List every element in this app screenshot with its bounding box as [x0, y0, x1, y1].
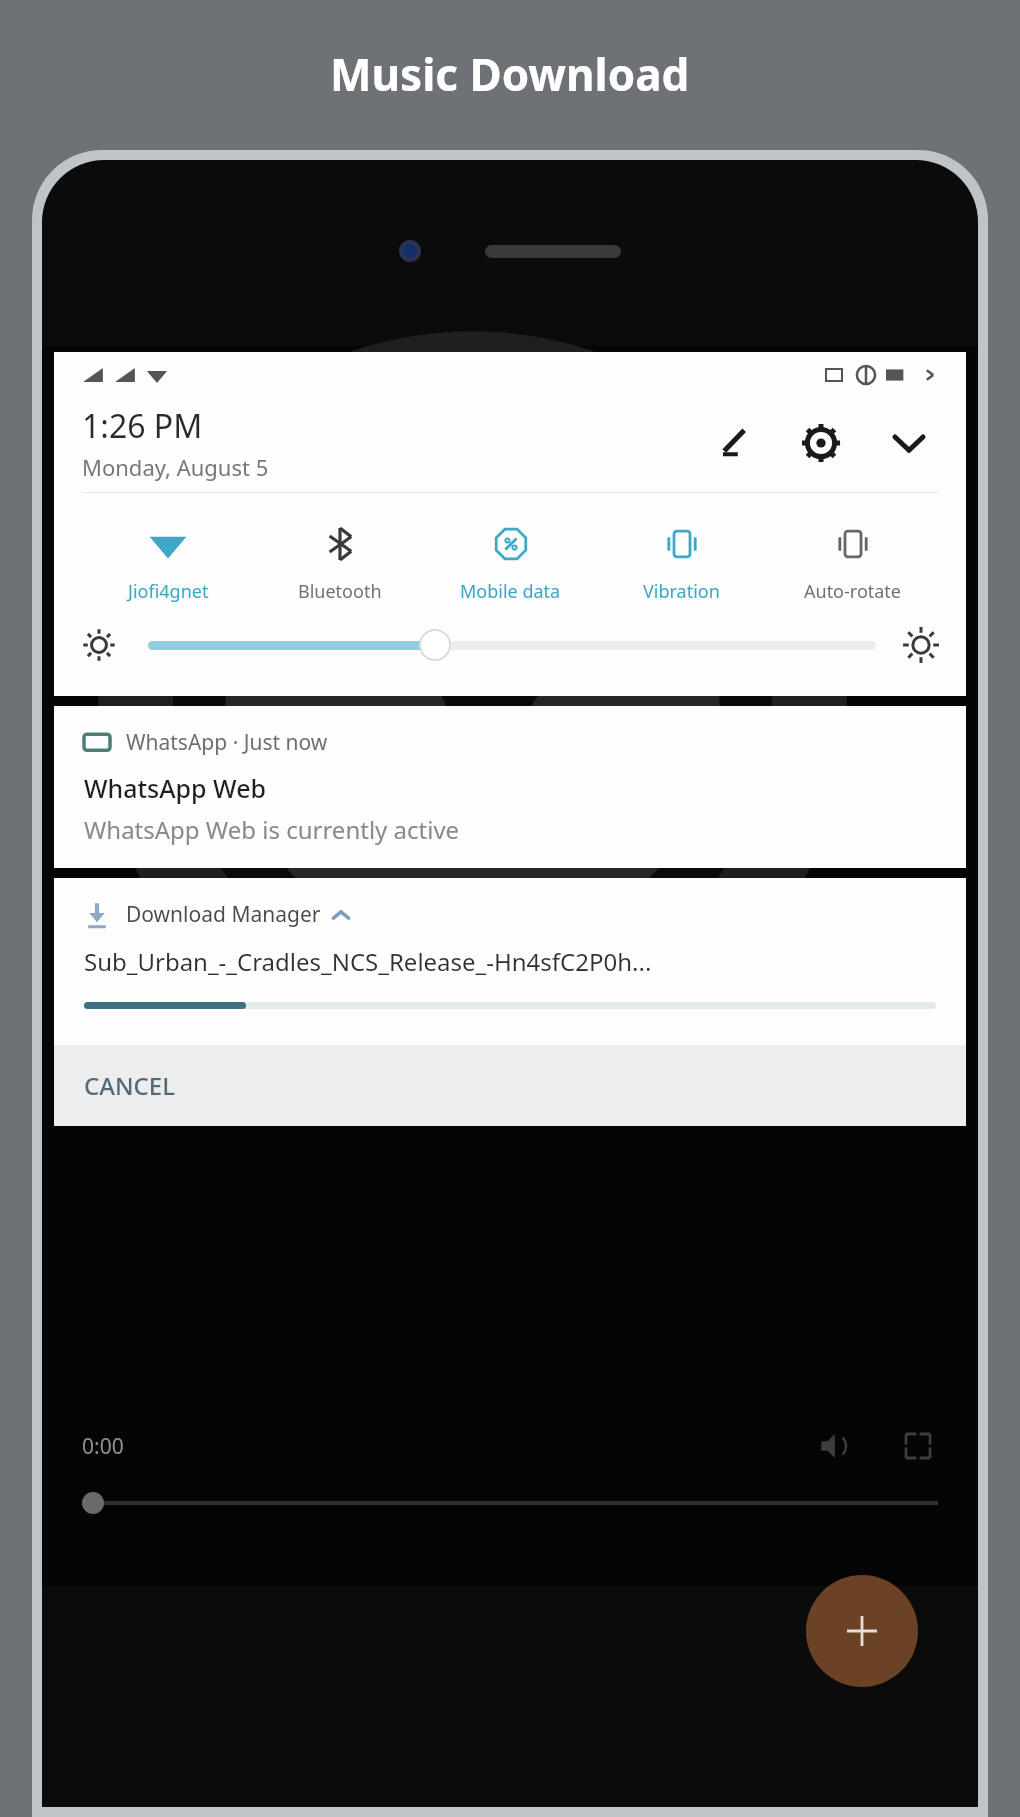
button[interactable]: CANCEL: [54, 1045, 966, 1126]
staticText: WhatsApp · Just now: [126, 728, 328, 757]
staticText: Download Manager: [126, 900, 321, 929]
button[interactable]: WhatsApp · Just now: [54, 706, 966, 868]
staticText: Mobile data: [460, 579, 561, 604]
button[interactable]: Settings: [792, 414, 850, 472]
button[interactable]: Add download: [806, 1575, 918, 1687]
button[interactable]: Mute: [814, 1426, 854, 1466]
button[interactable]: Jiofi4gnet: [82, 519, 254, 606]
staticText: Auto-rotate: [804, 579, 902, 604]
staticText: WhatsApp Web is currently active: [84, 813, 460, 846]
staticText: Sub_Urban_-_Cradles_NCS_Release_-Hn4sfC2…: [84, 945, 652, 978]
button[interactable]: Expand: [880, 414, 938, 472]
button[interactable]: Vibration: [596, 519, 767, 606]
button[interactable]: Bluetooth: [254, 519, 425, 606]
button[interactable]: Mobile data: [425, 519, 596, 606]
staticText: CANCEL: [84, 1069, 176, 1102]
staticText: Monday, August 5: [82, 452, 269, 482]
button[interactable]: Auto-rotate: [767, 519, 938, 606]
staticText: Vibration: [643, 579, 720, 604]
staticText: 0:00: [82, 1432, 124, 1461]
button[interactable]: Download Manager: [54, 878, 966, 1045]
staticText: Jiofi4gnet: [128, 579, 209, 604]
staticText: Bluetooth: [298, 579, 382, 604]
staticText: Music Download: [330, 44, 690, 104]
button[interactable]: Fullscreen: [898, 1426, 938, 1466]
button[interactable]: Edit: [704, 414, 762, 472]
staticText: WhatsApp Web: [84, 771, 266, 805]
staticText: 1:26 PM: [82, 404, 203, 448]
